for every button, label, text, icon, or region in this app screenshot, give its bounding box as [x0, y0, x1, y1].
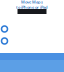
staticText: to iPhone or iPad — [16, 4, 48, 10]
staticText: Move Maps — [21, 0, 43, 4]
